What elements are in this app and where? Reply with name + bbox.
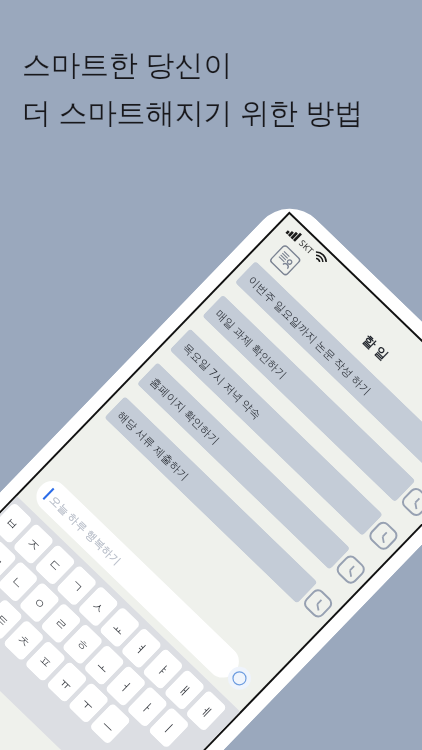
staticText: ㅂ: [2, 513, 22, 534]
button[interactable]: ㅣ: [148, 706, 190, 749]
staticText: ㅍ: [35, 651, 56, 672]
button[interactable]: ㅂ: [0, 502, 33, 544]
staticText: SKT: [297, 237, 317, 256]
staticText: 스마트한 당신이: [22, 44, 233, 84]
staticText: ㄹ: [51, 613, 72, 634]
staticText: ㄴ: [8, 572, 28, 592]
staticText: ㄱ: [67, 576, 87, 596]
staticText: ㅇ: [30, 593, 50, 613]
button[interactable]: ㅜ: [67, 682, 110, 724]
button[interactable]: ㅐ: [163, 669, 206, 711]
button[interactable]: ㅅ: [77, 585, 119, 628]
button[interactable]: ㅇ: [18, 581, 61, 624]
button[interactable]: ㅌ: [0, 598, 23, 641]
staticText: 목요일 7시 저녁 약속: [180, 340, 264, 422]
staticText: ㅣ: [159, 718, 179, 738]
button[interactable]: ㄴ: [0, 560, 39, 603]
staticText: 이번주 일요일까지 논문 작성 하기: [245, 272, 375, 398]
staticText: ㅈ: [24, 534, 44, 555]
button[interactable]: 목요일 7시 저녁 약속: [164, 323, 407, 560]
staticText: ㅕ: [131, 638, 152, 659]
button[interactable]: ㅍ: [24, 640, 66, 682]
staticText: ㅡ: [100, 714, 121, 734]
button[interactable]: ㄹ: [40, 602, 82, 645]
button[interactable]: ㅡ: [89, 702, 131, 745]
staticText: ㅑ: [153, 659, 174, 680]
staticText: 오늘 하루 행복하기: [47, 492, 125, 568]
button[interactable]: ㄷ: [34, 544, 76, 586]
button[interactable]: ㅎ: [61, 623, 104, 665]
staticText: 해당 서류 제출하기: [115, 407, 193, 483]
button[interactable]: ㅏ: [126, 685, 168, 728]
staticText: ㅎ: [73, 634, 93, 655]
staticText: ㅜ: [79, 693, 99, 713]
staticText: 매일 과제 확인하기: [213, 306, 291, 382]
staticText: ㅌ: [0, 610, 13, 630]
button[interactable]: ㅓ: [105, 665, 147, 707]
button[interactable]: 해당 서류 제출하기: [98, 390, 342, 627]
button[interactable]: ㅊ: [3, 619, 45, 662]
button[interactable]: ㅕ: [120, 627, 162, 669]
button[interactable]: [223, 662, 256, 694]
button[interactable]: ㅑ: [142, 648, 184, 690]
button[interactable]: 홈페이지 확인하기: [131, 357, 375, 593]
button[interactable]: 이번주 일요일까지 논문 작성 하기: [229, 255, 422, 492]
staticText: ㅔ: [196, 701, 217, 721]
staticText: ㅗ: [94, 655, 115, 676]
button[interactable]: 매일 과제 확인하기: [196, 289, 422, 526]
staticText: ㅏ: [137, 697, 158, 717]
button[interactable]: ㅛ: [99, 606, 141, 649]
staticText: 더 스마트해지기 위한 방법: [22, 92, 364, 132]
staticText: 홈페이지 확인하기: [147, 373, 223, 447]
button[interactable]: ㅈ: [12, 523, 55, 565]
staticText: ㄷ: [45, 555, 66, 575]
staticText: ㅐ: [175, 680, 195, 700]
button[interactable]: ㄱ: [55, 564, 98, 607]
staticText: ㅓ: [116, 676, 136, 696]
button[interactable]: ㅋ: [0, 577, 2, 620]
button[interactable]: ㅗ: [83, 644, 125, 686]
staticText: 할 일: [359, 331, 393, 365]
staticText: ㅁ: [0, 551, 7, 571]
button[interactable]: ㅁ: [0, 540, 17, 582]
staticText: ㅅ: [88, 597, 109, 617]
button[interactable]: ㅔ: [185, 689, 227, 732]
button[interactable]: 오늘 하루 행복하기: [30, 474, 245, 684]
staticText: ㅛ: [110, 617, 130, 638]
button[interactable]: ㅠ: [46, 661, 88, 703]
staticText: ㅊ: [14, 630, 34, 651]
staticText: ㅠ: [57, 672, 78, 693]
